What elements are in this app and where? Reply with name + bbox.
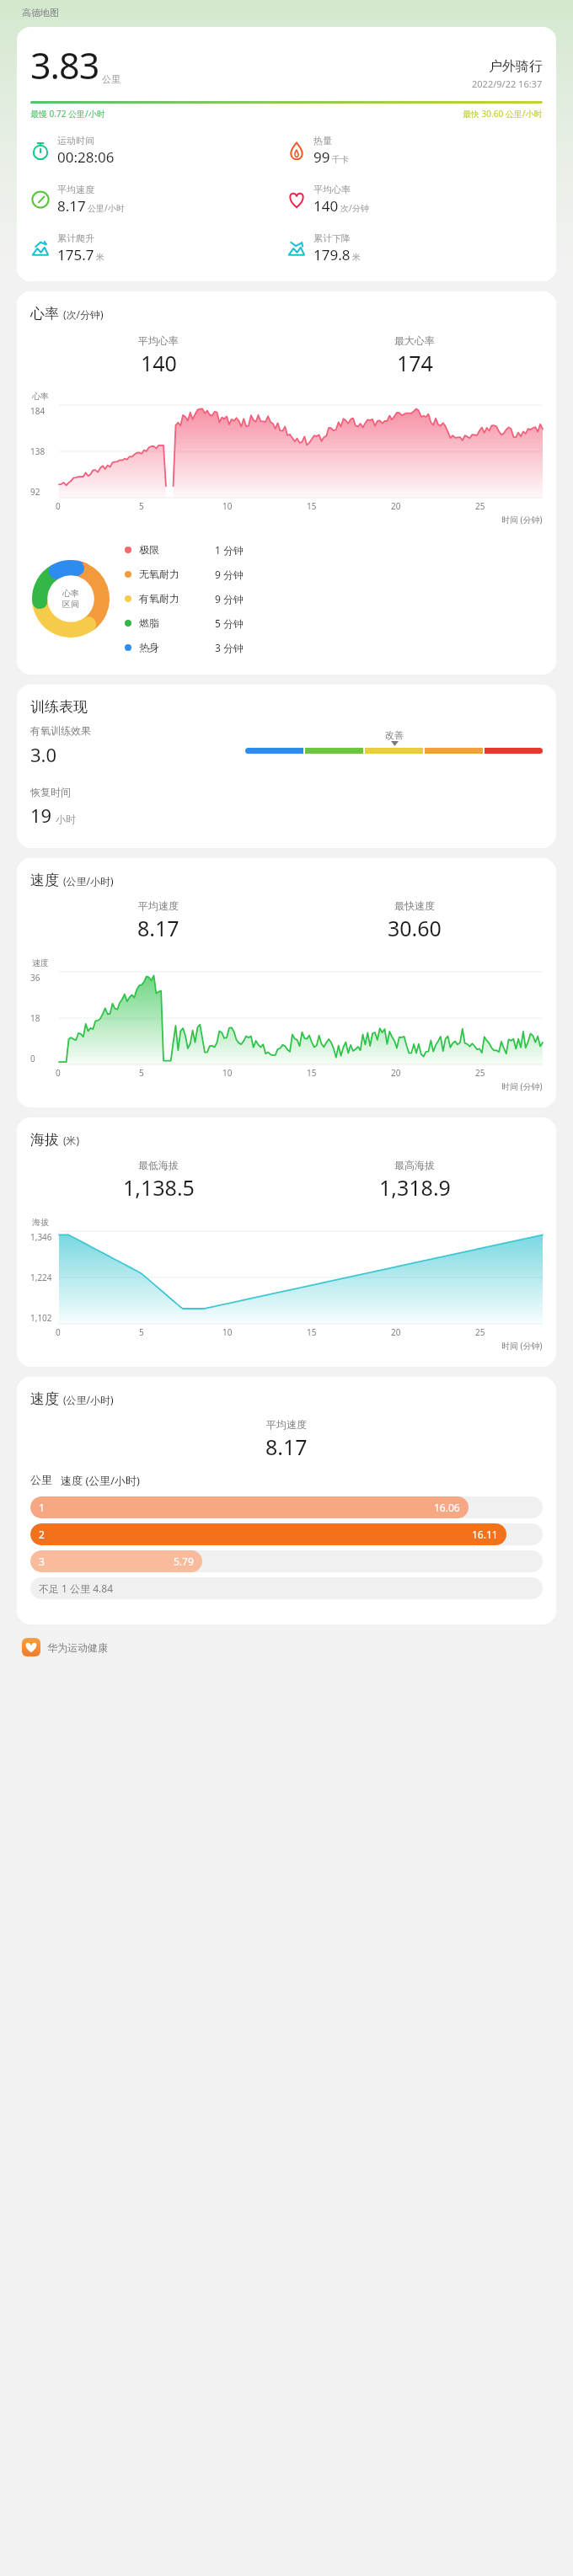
staticText: 公里/小时 <box>88 202 125 214</box>
button[interactable]: 2 <box>30 1523 543 1545</box>
staticText: 15 <box>307 1326 317 1338</box>
staticText: 184 <box>30 405 46 417</box>
staticText: 平均速度 <box>57 184 94 195</box>
staticText: 9 分钟 <box>215 592 244 605</box>
button[interactable]: 极限 <box>125 537 543 562</box>
button[interactable]: 1 <box>30 1496 543 1518</box>
staticText: 18 <box>30 1012 40 1024</box>
staticText: 15 <box>307 1067 317 1079</box>
staticText: 20 <box>391 1067 401 1079</box>
other: 累计下降 <box>286 238 307 259</box>
staticText: 速度 <box>32 957 49 968</box>
button[interactable]: 训练表现 <box>17 685 556 848</box>
staticText: 速度 (公里/小时) <box>61 1473 141 1488</box>
staticText: 米 <box>352 252 361 263</box>
staticText: 最快 30.60 公里/小时 <box>463 108 543 120</box>
staticText: 1 分钟 <box>215 543 244 557</box>
staticText: 30.60 <box>388 914 442 942</box>
staticText: 心率 <box>62 588 79 599</box>
staticText: 0 <box>30 1053 35 1064</box>
staticText: 时间 (分钟) <box>501 1080 543 1092</box>
staticText: 无氧耐力 <box>139 568 215 580</box>
staticText: 8.17 <box>137 914 179 942</box>
staticText: 累计爬升 <box>57 232 94 244</box>
staticText: 5 分钟 <box>215 616 244 630</box>
staticText: 不足 1 公里 4.84 <box>39 1581 114 1595</box>
button[interactable]: 平均速度 <box>30 184 286 216</box>
staticText: 19 <box>30 803 52 828</box>
staticText: 3 <box>39 1555 45 1568</box>
staticText: 25 <box>475 1326 485 1338</box>
staticText: 平均心率 <box>138 334 179 347</box>
staticText: 华为运动健康 <box>47 1641 108 1654</box>
staticText: 极限 <box>139 543 215 556</box>
staticText: 海拔 <box>32 1217 49 1228</box>
staticText: 速度 <box>30 872 59 889</box>
staticText: 25 <box>475 1067 485 1079</box>
staticText: 1,224 <box>30 1272 52 1283</box>
staticText: 公里 <box>30 1473 52 1486</box>
staticText: 小时 <box>56 813 76 825</box>
button[interactable]: 华为运动健康 <box>22 1638 573 1656</box>
button[interactable]: 速度 <box>17 1377 556 1624</box>
staticText: 3.0 <box>30 742 57 767</box>
staticText: 最大心率 <box>394 334 435 347</box>
staticText: 最高海拔 <box>394 1159 435 1171</box>
button[interactable]: 有氧耐力 <box>125 586 543 611</box>
staticText: 0 <box>56 500 61 512</box>
button[interactable]: 热量 <box>286 135 543 167</box>
staticText: 0 <box>56 1067 61 1079</box>
button[interactable]: 平均心率 <box>286 184 543 216</box>
other: 平均速度 <box>30 189 51 210</box>
button[interactable]: 累计下降 <box>286 232 543 264</box>
staticText: 0 <box>56 1326 61 1338</box>
staticText: (米) <box>63 1133 80 1147</box>
staticText: 改善 <box>385 729 404 741</box>
staticText: 20 <box>391 500 401 512</box>
button[interactable]: 不足 1 公里 4.84 <box>30 1577 543 1599</box>
other: 累计爬升 <box>30 238 51 259</box>
button[interactable]: 燃脂 <box>125 611 543 635</box>
staticText: 热身 <box>139 641 215 653</box>
staticText: 有氧训练效果 <box>30 724 91 737</box>
button[interactable]: 海拔 <box>17 1117 556 1367</box>
staticText: 5 <box>139 500 144 512</box>
staticText: (公里/小时) <box>63 1393 114 1406</box>
button[interactable]: 累计爬升 <box>30 232 286 264</box>
staticText: 恢复时间 <box>30 786 71 798</box>
staticText: 户外骑行 <box>489 58 543 75</box>
staticText: 5.79 <box>174 1555 194 1568</box>
staticText: 5 <box>139 1326 144 1338</box>
staticText: 1,102 <box>30 1312 52 1324</box>
staticText: 10 <box>222 500 233 512</box>
button[interactable]: 速度 <box>17 858 556 1107</box>
other: 热量 <box>286 141 307 161</box>
button[interactable]: 心率 <box>17 291 556 675</box>
staticText: 175.7 <box>57 245 94 264</box>
staticText: 心率 <box>30 305 59 323</box>
staticText: 累计下降 <box>313 232 351 244</box>
staticText: 1,346 <box>30 1231 52 1243</box>
staticText: 平均速度 <box>138 899 179 912</box>
staticText: 次/分钟 <box>340 202 369 214</box>
staticText: 训练表现 <box>30 698 88 716</box>
staticText: 25 <box>475 500 485 512</box>
staticText: 10 <box>222 1326 233 1338</box>
button[interactable]: 3.83 <box>17 27 556 281</box>
staticText: 179.8 <box>313 245 351 264</box>
staticText: 92 <box>30 486 40 498</box>
staticText: 140 <box>313 196 339 216</box>
staticText: 最低海拔 <box>138 1159 179 1171</box>
staticText: 千卡 <box>332 154 349 165</box>
staticText: 5 <box>139 1067 144 1079</box>
button[interactable]: 3 <box>30 1550 543 1572</box>
button[interactable]: 热身 <box>125 635 543 659</box>
button[interactable]: 运动时间 <box>30 135 286 167</box>
staticText: (次/分钟) <box>63 307 104 321</box>
staticText: 1 <box>39 1501 45 1514</box>
staticText: 3 分钟 <box>215 641 244 654</box>
staticText: 平均心率 <box>313 184 351 195</box>
staticText: (公里/小时) <box>63 874 114 888</box>
staticText: 138 <box>30 445 46 457</box>
button[interactable]: 无氧耐力 <box>125 562 543 586</box>
